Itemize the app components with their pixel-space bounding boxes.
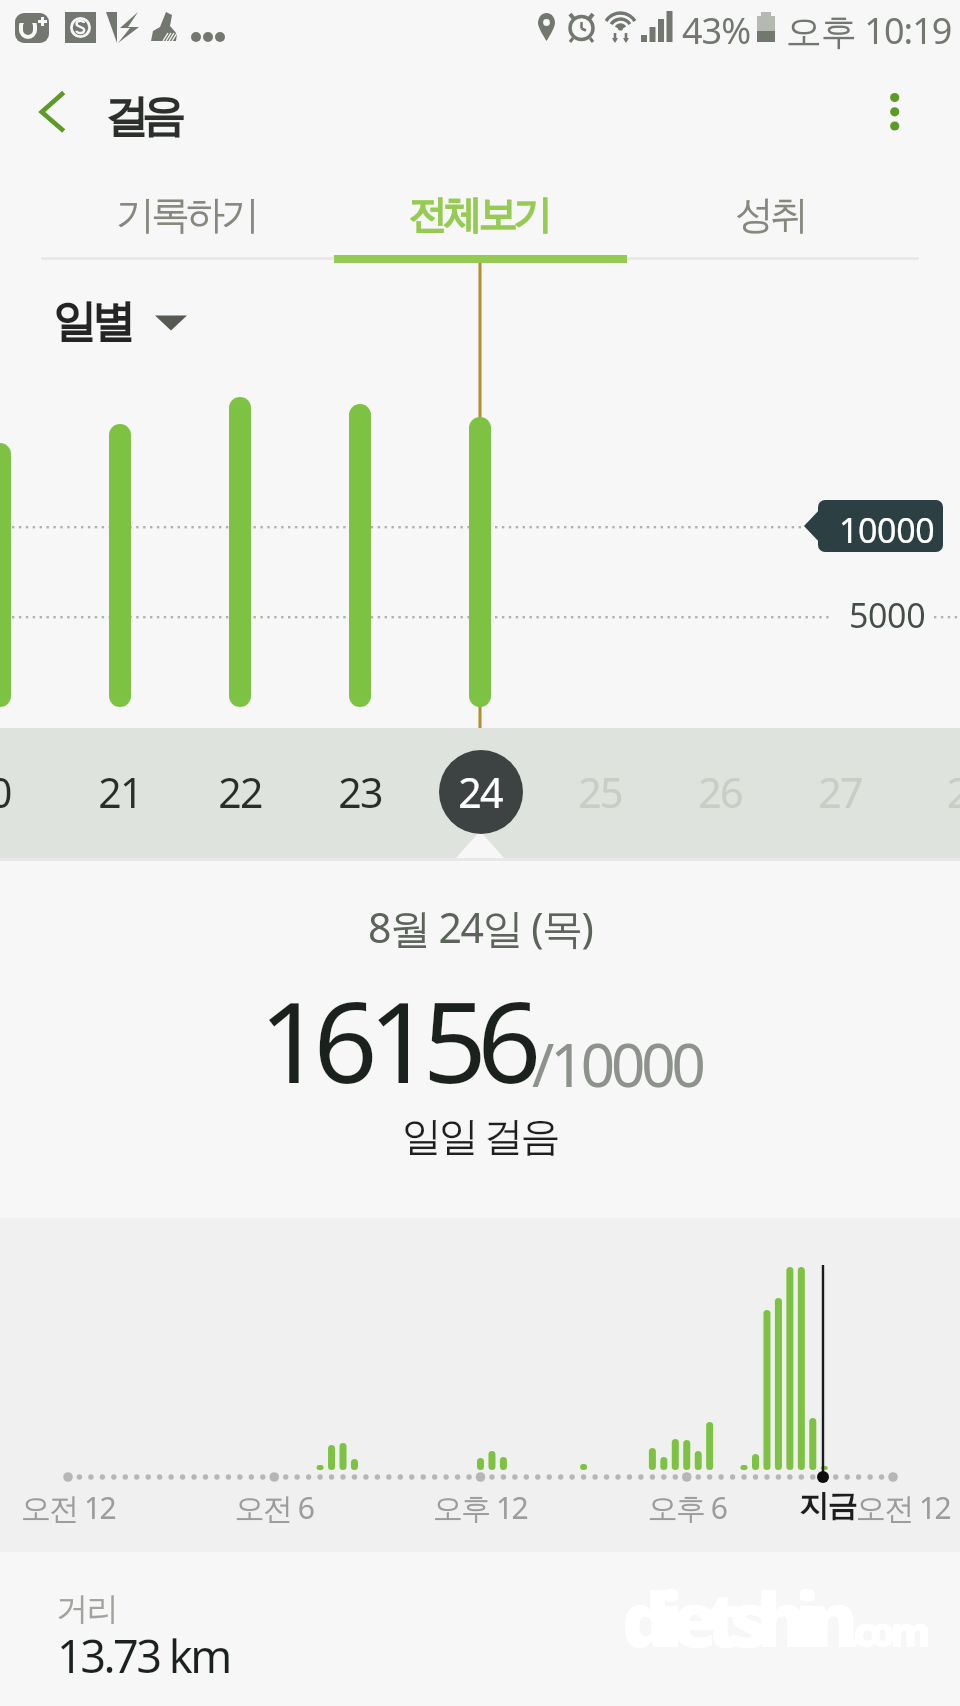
staticText: 43%: [682, 6, 751, 55]
staticText: 오후 12: [370, 1487, 590, 1528]
staticText: 기록하기: [118, 190, 258, 239]
staticText: 2: [898, 764, 960, 820]
staticText: 24: [420, 764, 540, 820]
staticText: 걸음: [108, 89, 182, 144]
staticText: 22: [180, 764, 300, 820]
staticText: 오후 10:19: [786, 6, 952, 55]
staticText: 성취: [737, 190, 807, 239]
staticText: 26: [660, 764, 780, 820]
button[interactable]: 전체보기: [334, 166, 626, 263]
staticText: 일별: [55, 294, 133, 349]
staticText: 오전 12: [0, 1487, 178, 1528]
staticText: 13.73 km: [57, 1625, 230, 1686]
staticText: /10000: [532, 1023, 702, 1105]
staticText: 10000: [839, 507, 935, 553]
button[interactable]: Back: [12, 72, 92, 152]
staticText: 8월 24일 (목): [368, 899, 593, 955]
staticText: 전체보기: [410, 190, 550, 239]
staticText: 5000: [849, 592, 926, 638]
button[interactable]: 성취: [626, 166, 918, 263]
staticText: .com: [847, 1604, 926, 1658]
staticText: 25: [540, 764, 660, 820]
staticText: 오후 6: [577, 1487, 797, 1528]
staticText: 0: [0, 764, 60, 820]
button[interactable]: 기록하기: [42, 166, 334, 263]
button[interactable]: More options: [855, 70, 935, 150]
staticText: 거리: [57, 1589, 118, 1629]
staticText: dietshin: [622, 1568, 847, 1669]
button[interactable]: 일별: [55, 292, 187, 350]
staticText: 오전 12: [856, 1487, 951, 1528]
staticText: 21: [60, 764, 180, 820]
staticText: 일일 걸음: [402, 1107, 558, 1162]
staticText: 23: [300, 764, 420, 820]
staticText: 16156: [259, 963, 532, 1116]
staticText: 지금: [799, 1487, 856, 1525]
staticText: 27: [780, 764, 900, 820]
staticText: 오전 6: [164, 1487, 384, 1528]
